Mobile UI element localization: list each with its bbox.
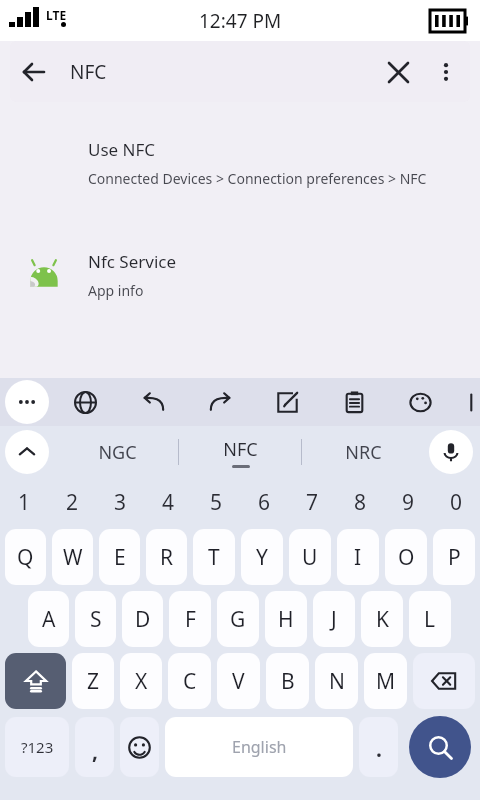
button[interactable]: Edit [265,380,309,424]
button[interactable]: J [313,591,355,647]
button[interactable]: Backspace [413,653,475,709]
staticText: W [63,543,83,572]
button[interactable]: 8 [336,478,384,526]
button[interactable]: L [409,591,451,647]
staticText: App info [88,281,144,300]
staticText: T [208,543,220,572]
button[interactable]: K [361,591,403,647]
button[interactable]: Clipboard [332,380,376,424]
staticText: V [232,667,245,696]
button[interactable]: N [315,653,358,709]
staticText: 6 [258,488,271,517]
staticText: U [302,543,318,572]
button[interactable]: Shift [5,653,66,709]
staticText: Use NFC [88,138,156,161]
staticText: H [278,605,294,634]
staticText: Z [87,667,100,696]
button[interactable]: Emoji [120,717,159,777]
button[interactable]: 0 [432,478,480,526]
staticText: D [135,605,151,634]
button[interactable]: Language [63,380,107,424]
button[interactable]: U [289,529,331,585]
staticText: X [135,667,148,696]
staticText: Y [256,543,268,572]
button[interactable]: X [120,653,162,709]
staticText: 2 [66,488,79,517]
button[interactable]: Q [5,529,46,585]
button[interactable]: P [433,529,475,585]
button[interactable]: A [28,591,69,647]
staticText: ?123 [21,737,54,757]
staticText: 5 [210,488,223,517]
button[interactable]: 7 [288,478,336,526]
button[interactable]: B [266,653,309,709]
button[interactable]: More tools [5,380,49,424]
button[interactable]: Voice input [429,430,473,474]
button[interactable]: 3 [96,478,144,526]
button[interactable]: Settings [458,380,480,424]
staticText: 3 [114,488,127,517]
staticText: 12:47 PM [199,8,282,34]
staticText: B [281,667,295,696]
staticText: E [114,543,126,572]
staticText: LTE [46,7,67,23]
button[interactable]: C [168,653,211,709]
button[interactable]: T [193,529,235,585]
button[interactable]: 5 [192,478,240,526]
staticText: NGC [98,440,137,465]
button[interactable]: Z [72,653,114,709]
staticText: J [331,605,337,634]
staticText: L [424,605,436,634]
button[interactable]: I [337,529,379,585]
button[interactable]: 2 [48,478,96,526]
staticText: Q [17,543,34,572]
button[interactable]: 4 [144,478,192,526]
button[interactable]: Theme [398,380,442,424]
staticText: O [398,543,415,572]
staticText: G [230,605,246,634]
staticText: I [354,543,362,572]
button[interactable]: Back [10,48,58,96]
button[interactable]: V [217,653,260,709]
button[interactable]: Expand toolbar [5,430,49,474]
staticText: Nfc Service [88,250,177,273]
button[interactable]: Y [241,529,283,585]
button[interactable]: NRC [302,426,424,478]
button[interactable]: English [165,717,353,777]
button[interactable]: Back [10,41,470,102]
button[interactable]: ?123 [5,717,69,777]
button[interactable]: Use NFC [0,118,480,231]
staticText: F [185,605,196,634]
button[interactable]: M [364,653,407,709]
button[interactable]: , [75,717,114,777]
staticText: K [376,605,389,634]
button[interactable]: F [169,591,211,647]
button[interactable]: Nfc Service [0,231,480,327]
button[interactable]: W [52,529,93,585]
staticText: 1 [18,488,31,517]
button[interactable]: Search [409,716,471,778]
staticText: C [183,667,197,696]
button[interactable]: G [217,591,259,647]
button[interactable]: S [75,591,116,647]
staticText: A [42,605,56,634]
staticText: N [329,667,345,696]
staticText: 4 [162,488,175,517]
button[interactable]: E [99,529,140,585]
button[interactable]: Redo [198,380,242,424]
button[interactable]: H [265,591,307,647]
button[interactable]: Clear [374,48,422,96]
button[interactable]: 9 [384,478,432,526]
button[interactable]: . [359,717,398,777]
staticText: 0 [450,488,463,517]
button[interactable]: R [146,529,187,585]
button[interactable]: 1 [0,478,48,526]
button[interactable]: Undo [131,380,175,424]
button[interactable]: O [385,529,427,585]
button[interactable]: NFC [179,426,301,478]
button[interactable]: D [122,591,163,647]
staticText: NRC [345,440,382,465]
button[interactable]: 6 [240,478,288,526]
button[interactable]: NGC [56,426,178,478]
button[interactable]: More options [422,48,470,96]
